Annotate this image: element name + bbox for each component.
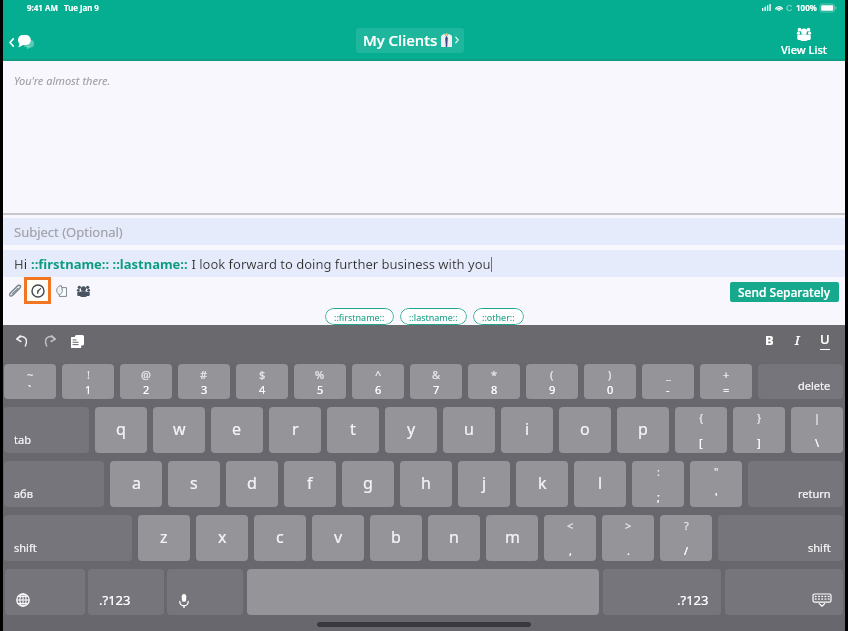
- button[interactable]: Templates: [52, 281, 71, 300]
- button[interactable]: ): [584, 364, 636, 399]
- button[interactable]: Send Separately: [730, 282, 839, 302]
- button[interactable]: ?: [660, 515, 712, 561]
- staticText: ::lastname::: [409, 311, 458, 323]
- button[interactable]: Paste: [68, 331, 86, 351]
- button[interactable]: :: [632, 461, 684, 507]
- staticText: .: [627, 543, 630, 558]
- button[interactable]: q: [95, 407, 147, 453]
- button[interactable]: p: [617, 407, 669, 453]
- button[interactable]: Schedule send: [27, 280, 48, 301]
- button[interactable]: w: [153, 407, 205, 453]
- staticText: t: [350, 418, 356, 440]
- button[interactable]: +: [700, 364, 752, 399]
- staticText: :: [657, 464, 660, 479]
- staticText: ::firstname::: [334, 311, 385, 323]
- button[interactable]: &: [410, 364, 462, 399]
- button[interactable]: B: [758, 329, 780, 351]
- button[interactable]: |: [791, 407, 843, 453]
- button[interactable]: Change language: [5, 569, 85, 615]
- button[interactable]: i: [501, 407, 553, 453]
- button[interactable]: s: [168, 461, 220, 507]
- button[interactable]: j: [458, 461, 510, 507]
- staticText: #: [200, 367, 208, 382]
- button[interactable]: Subject (Optional): [3, 218, 845, 245]
- button[interactable]: tab: [4, 407, 89, 453]
- button[interactable]: View List: [781, 27, 827, 57]
- staticText: r: [292, 418, 299, 440]
- button[interactable]: <: [544, 515, 596, 561]
- button[interactable]: k: [516, 461, 568, 507]
- button[interactable]: return: [748, 461, 843, 507]
- button[interactable]: @: [120, 364, 172, 399]
- button[interactable]: U: [814, 329, 836, 351]
- staticText: ::firstname:: ::lastname::: [31, 255, 188, 273]
- button[interactable]: a: [110, 461, 162, 507]
- button[interactable]: u: [443, 407, 495, 453]
- button[interactable]: Recipients: [74, 281, 93, 300]
- staticText: b: [391, 526, 401, 548]
- button[interactable]: delete: [758, 364, 843, 399]
- staticText: ~: [27, 367, 34, 382]
- button[interactable]: ::firstname::: [325, 308, 394, 325]
- button[interactable]: ": [690, 461, 742, 507]
- button[interactable]: #: [178, 364, 230, 399]
- button[interactable]: r: [269, 407, 321, 453]
- staticText: Tue Jan 9: [64, 2, 99, 13]
- staticText: ::other::: [482, 311, 515, 323]
- button[interactable]: {: [675, 407, 727, 453]
- button[interactable]: z: [138, 515, 190, 561]
- button[interactable]: ^: [352, 364, 404, 399]
- button[interactable]: y: [385, 407, 437, 453]
- button[interactable]: I: [786, 329, 808, 351]
- button[interactable]: ~: [4, 364, 56, 399]
- button[interactable]: d: [226, 461, 278, 507]
- button[interactable]: абв: [4, 461, 104, 507]
- button[interactable]: l: [574, 461, 626, 507]
- button[interactable]: My Clients: [356, 28, 464, 53]
- staticText: 2: [143, 382, 150, 396]
- button[interactable]: m: [486, 515, 538, 561]
- staticText: i: [525, 418, 530, 440]
- button[interactable]: o: [559, 407, 611, 453]
- button[interactable]: shift: [4, 515, 132, 561]
- button[interactable]: (: [526, 364, 578, 399]
- staticText: |: [814, 410, 821, 425]
- button[interactable]: g: [342, 461, 394, 507]
- staticText: k: [538, 472, 547, 494]
- staticText: w: [173, 418, 186, 440]
- button[interactable]: >: [602, 515, 654, 561]
- button[interactable]: .?123: [88, 569, 164, 615]
- button[interactable]: Hide keyboard: [725, 569, 843, 615]
- button[interactable]: Attach file: [3, 280, 24, 301]
- button[interactable]: t: [327, 407, 379, 453]
- button[interactable]: ::other::: [473, 308, 524, 325]
- staticText: абв: [14, 486, 33, 501]
- button[interactable]: h: [400, 461, 452, 507]
- button[interactable]: Hi: [3, 250, 845, 277]
- staticText: s: [190, 472, 198, 494]
- button[interactable]: b: [370, 515, 422, 561]
- button[interactable]: .?123: [603, 569, 721, 615]
- button[interactable]: e: [211, 407, 263, 453]
- button[interactable]: !: [62, 364, 114, 399]
- staticText: .?123: [99, 591, 131, 609]
- staticText: =: [723, 382, 730, 396]
- button[interactable]: }: [733, 407, 785, 453]
- staticText: n: [449, 526, 459, 548]
- button[interactable]: $: [236, 364, 288, 399]
- button[interactable]: ::lastname::: [400, 308, 467, 325]
- button[interactable]: Undo: [13, 331, 31, 351]
- button[interactable]: _: [642, 364, 694, 399]
- button[interactable]: Back to messages: [9, 35, 34, 49]
- button[interactable]: f: [284, 461, 336, 507]
- button[interactable]: Voice input: [167, 569, 243, 615]
- button[interactable]: n: [428, 515, 480, 561]
- button[interactable]: Redo: [40, 331, 58, 351]
- button[interactable]: x: [196, 515, 248, 561]
- button[interactable]: v: [312, 515, 364, 561]
- button[interactable]: shift: [718, 515, 843, 561]
- button[interactable]: *: [468, 364, 520, 399]
- button[interactable]: %: [294, 364, 346, 399]
- button[interactable]: c: [254, 515, 306, 561]
